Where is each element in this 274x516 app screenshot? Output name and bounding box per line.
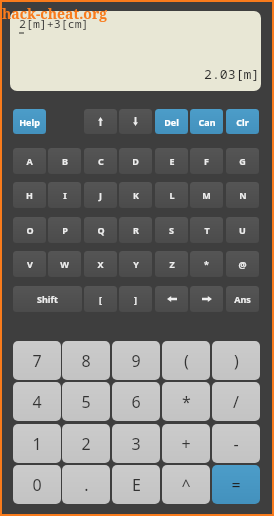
staticText: + <box>181 433 191 455</box>
button[interactable]: D <box>119 148 152 174</box>
button[interactable]: Help <box>13 109 46 134</box>
button[interactable]: Y <box>119 251 152 277</box>
button[interactable]: Ans <box>226 286 259 312</box>
button[interactable]: X <box>84 251 117 277</box>
button[interactable]: 0 <box>13 465 61 504</box>
button[interactable]: - <box>212 424 260 463</box>
staticText: K <box>133 189 139 201</box>
button[interactable]: R <box>119 217 152 243</box>
staticText: R <box>133 224 139 236</box>
staticText: * <box>182 391 191 413</box>
button[interactable]: / <box>212 382 260 421</box>
staticText: N <box>239 189 247 201</box>
staticText: U <box>239 224 246 236</box>
button[interactable]: P <box>48 217 81 243</box>
button[interactable]: H <box>13 182 46 208</box>
staticText: * <box>204 258 209 270</box>
button[interactable]: I <box>48 182 81 208</box>
button[interactable]: E <box>112 465 160 504</box>
button[interactable]: Q <box>84 217 117 243</box>
staticText: L <box>169 189 175 201</box>
button[interactable]: J <box>84 182 117 208</box>
button[interactable]: A <box>13 148 46 174</box>
button[interactable]: Z <box>155 251 188 277</box>
button[interactable]: N <box>226 182 259 208</box>
staticText: J <box>99 189 102 201</box>
button[interactable]: Up <box>84 109 117 134</box>
button[interactable]: 8 <box>62 341 110 380</box>
button[interactable]: Del <box>155 109 188 134</box>
button[interactable]: @ <box>226 251 259 277</box>
staticText: G <box>239 155 246 167</box>
staticText: ( <box>184 350 189 372</box>
button[interactable]: * <box>190 251 223 277</box>
button[interactable]: B <box>48 148 81 174</box>
staticText: T <box>204 224 210 236</box>
staticText: hack-cheat.org <box>2 4 108 23</box>
button[interactable]: * <box>162 382 210 421</box>
button[interactable]: Can <box>190 109 223 134</box>
staticText: W <box>60 258 69 270</box>
button[interactable]: + <box>162 424 210 463</box>
button[interactable]: 7 <box>13 341 61 380</box>
staticText: = <box>231 474 241 496</box>
button[interactable]: Shift <box>13 286 82 312</box>
button[interactable]: G <box>226 148 259 174</box>
staticText: H <box>26 189 33 201</box>
staticText: O <box>26 224 34 236</box>
staticText: Shift <box>37 293 58 305</box>
button[interactable]: T <box>190 217 223 243</box>
staticText: Q <box>97 224 105 236</box>
staticText: 2[m]+3[cm] <box>19 16 89 32</box>
staticText: Ans <box>234 293 251 305</box>
staticText: 2 <box>81 433 91 455</box>
button[interactable]: . <box>62 465 110 504</box>
staticText: D <box>132 155 139 167</box>
staticText: - <box>233 433 239 455</box>
button[interactable]: Down <box>119 109 152 134</box>
button[interactable]: 2 <box>62 424 110 463</box>
button[interactable]: L <box>155 182 188 208</box>
staticText: S <box>169 224 174 236</box>
staticText: M <box>202 189 211 201</box>
button[interactable]: C <box>84 148 117 174</box>
button[interactable]: 4 <box>13 382 61 421</box>
button[interactable]: ( <box>162 341 210 380</box>
staticText: C <box>98 155 104 167</box>
staticText: X <box>97 258 104 270</box>
button[interactable]: ] <box>119 286 152 312</box>
button[interactable]: M <box>190 182 223 208</box>
button[interactable]: ) <box>212 341 260 380</box>
button[interactable]: E <box>155 148 188 174</box>
button[interactable]: ^ <box>162 465 210 504</box>
staticText: Clr <box>236 116 249 128</box>
button[interactable]: F <box>190 148 223 174</box>
button[interactable]: 6 <box>112 382 160 421</box>
button[interactable]: 1 <box>13 424 61 463</box>
button[interactable]: K <box>119 182 152 208</box>
button[interactable]: V <box>13 251 46 277</box>
staticText: 0 <box>32 474 42 496</box>
button[interactable]: 3 <box>112 424 160 463</box>
staticText: 4 <box>32 391 42 413</box>
button[interactable]: Left <box>155 286 188 312</box>
button[interactable]: [ <box>84 286 117 312</box>
button[interactable]: U <box>226 217 259 243</box>
button[interactable]: 9 <box>112 341 160 380</box>
staticText: 2.03[m] <box>204 65 260 83</box>
button[interactable]: W <box>48 251 81 277</box>
button[interactable]: 5 <box>62 382 110 421</box>
staticText: [ <box>99 293 102 305</box>
staticText: ) <box>234 350 239 372</box>
button[interactable]: S <box>155 217 188 243</box>
staticText: Z <box>169 258 175 270</box>
button[interactable]: O <box>13 217 46 243</box>
staticText: / <box>233 391 239 413</box>
button[interactable]: Right <box>190 286 223 312</box>
button[interactable]: Clr <box>226 109 259 134</box>
staticText: 8 <box>81 350 91 372</box>
staticText: Help <box>19 116 40 128</box>
button[interactable]: = <box>212 465 260 504</box>
staticText: E <box>169 155 175 167</box>
staticText: 3 <box>131 433 141 455</box>
